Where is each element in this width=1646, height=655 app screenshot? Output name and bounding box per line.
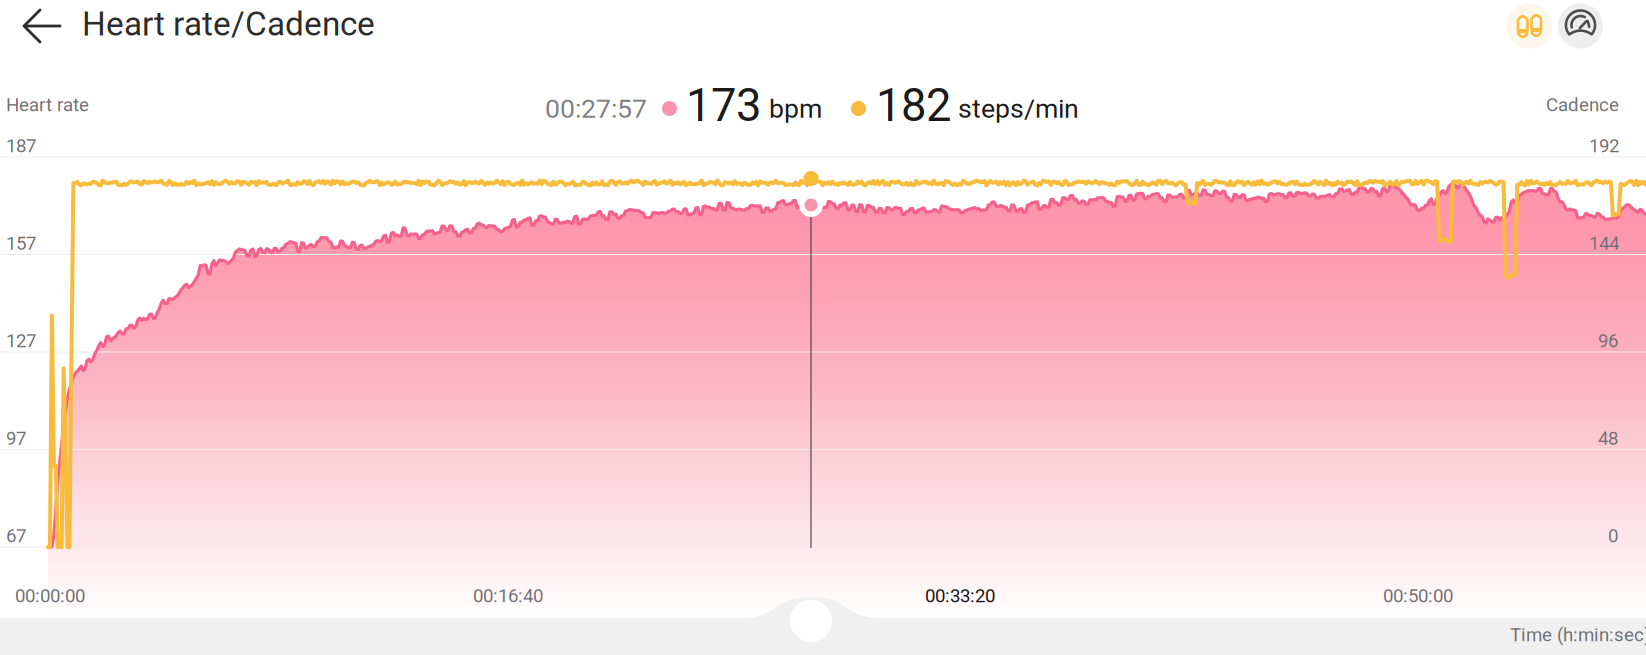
staticText: 127 bbox=[6, 330, 36, 352]
staticText: bpm bbox=[769, 93, 822, 124]
staticText: 48 bbox=[1598, 427, 1618, 449]
button[interactable]: Steps bbox=[1507, 3, 1552, 48]
staticText: 00:33:20 bbox=[925, 585, 995, 607]
staticText: 173 bbox=[686, 79, 761, 132]
staticText: 144 bbox=[1589, 232, 1619, 254]
staticText: 182 bbox=[876, 79, 951, 132]
staticText: 97 bbox=[6, 427, 26, 449]
staticText: 157 bbox=[6, 232, 36, 254]
staticText: 96 bbox=[1598, 330, 1618, 352]
staticText: 00:27:57 bbox=[545, 93, 647, 124]
staticText: 00:16:40 bbox=[473, 585, 543, 607]
button[interactable]: Back bbox=[0, 0, 82, 52]
staticText: Cadence bbox=[1546, 94, 1619, 116]
staticText: Time (h:min:sec) bbox=[1510, 624, 1646, 646]
staticText: 67 bbox=[6, 525, 26, 547]
staticText: steps/min bbox=[958, 93, 1079, 124]
staticText: 00:50:00 bbox=[1383, 585, 1453, 607]
staticText: 192 bbox=[1589, 135, 1619, 157]
staticText: 0 bbox=[1608, 525, 1618, 547]
button[interactable]: Pace bbox=[1558, 3, 1603, 48]
staticText: Heart rate bbox=[6, 94, 89, 116]
staticText: 187 bbox=[6, 135, 36, 157]
staticText: 00:00:00 bbox=[15, 585, 85, 607]
staticText: Heart rate/Cadence bbox=[82, 4, 375, 44]
